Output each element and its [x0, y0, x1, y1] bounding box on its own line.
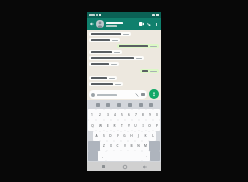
- button[interactable]: [89, 32, 131, 36]
- button[interactable]: U: [132, 120, 139, 131]
- button[interactable]: W: [96, 120, 104, 131]
- button[interactable]: H: [128, 131, 135, 141]
- button[interactable]: Voice call: [145, 20, 153, 28]
- staticText: O: [148, 124, 151, 128]
- button[interactable]: Recents: [99, 162, 108, 171]
- staticText: L: [152, 134, 154, 138]
- staticText: U: [134, 124, 137, 128]
- button[interactable]: 3: [104, 109, 111, 120]
- button[interactable]: More options: [153, 21, 159, 27]
- button[interactable]: Z: [100, 141, 107, 151]
- button[interactable]: ,: [98, 151, 106, 161]
- staticText: J: [138, 134, 139, 138]
- button[interactable]: 2: [96, 109, 104, 120]
- button[interactable]: [89, 38, 120, 42]
- button[interactable]: .: [142, 151, 150, 161]
- staticText: D: [109, 134, 112, 138]
- button[interactable]: M: [142, 141, 149, 151]
- button[interactable]: Contact photo: [96, 20, 104, 28]
- button[interactable]: L: [149, 131, 156, 141]
- button[interactable]: 8: [139, 109, 146, 120]
- button[interactable]: 1: [88, 109, 96, 120]
- staticText: N: [137, 144, 140, 148]
- button[interactable]: I: [139, 120, 146, 131]
- staticText: W: [99, 124, 102, 128]
- button[interactable]: D: [107, 131, 114, 141]
- button[interactable]: Home: [120, 162, 129, 171]
- staticText: S: [103, 134, 105, 138]
- button[interactable]: 5: [118, 109, 125, 120]
- staticText: 9: [149, 113, 151, 117]
- button[interactable]: [117, 44, 159, 48]
- button[interactable]: [106, 22, 137, 27]
- button[interactable]: Back: [89, 21, 95, 27]
- button[interactable]: [89, 76, 117, 80]
- button[interactable]: Back: [140, 162, 149, 171]
- button[interactable]: Clipboard: [138, 102, 143, 107]
- button[interactable]: Record voice message: [149, 89, 159, 99]
- button[interactable]: 7: [132, 109, 139, 120]
- staticText: ,: [102, 154, 103, 158]
- staticText: I: [142, 124, 144, 128]
- staticText: G: [123, 134, 126, 138]
- button[interactable]: A: [93, 131, 100, 141]
- button[interactable]: N: [135, 141, 142, 151]
- button[interactable]: Video call: [137, 20, 145, 28]
- staticText: M: [144, 144, 147, 148]
- button[interactable]: Settings: [116, 102, 121, 107]
- button[interactable]: [89, 56, 144, 60]
- button[interactable]: K: [142, 131, 149, 141]
- button[interactable]: E: [104, 120, 111, 131]
- button[interactable]: 0: [153, 109, 160, 120]
- button[interactable]: Q: [88, 120, 96, 131]
- button[interactable]: V: [121, 141, 128, 151]
- staticText: T: [121, 124, 123, 128]
- button[interactable]: Theme: [127, 102, 132, 107]
- button[interactable]: S: [100, 131, 107, 141]
- staticText: F: [117, 134, 119, 138]
- button[interactable]: 4: [111, 109, 118, 120]
- staticText: .: [146, 154, 147, 158]
- staticText: E: [107, 124, 109, 128]
- button[interactable]: [89, 82, 123, 86]
- button[interactable]: More: [148, 102, 153, 107]
- staticText: 7: [135, 113, 137, 117]
- staticText: 6: [128, 113, 130, 117]
- staticText: 5: [121, 113, 123, 117]
- button[interactable]: T: [118, 120, 125, 131]
- button[interactable]: C: [114, 141, 121, 151]
- staticText: Y: [128, 124, 130, 128]
- button[interactable]: [140, 69, 159, 73]
- staticText: 4: [114, 113, 116, 117]
- button[interactable]: G: [121, 131, 128, 141]
- other: Attach: [135, 93, 139, 97]
- staticText: Q: [91, 124, 94, 128]
- staticText: C: [116, 144, 119, 148]
- button[interactable]: Y: [125, 120, 132, 131]
- staticText: V: [124, 144, 126, 148]
- staticText: A: [95, 134, 98, 138]
- button[interactable]: 6: [125, 109, 132, 120]
- button[interactable]: Sticker: [105, 102, 110, 107]
- button[interactable]: B: [128, 141, 135, 151]
- staticText: 8: [142, 113, 144, 117]
- button[interactable]: [89, 62, 119, 66]
- staticText: K: [144, 134, 147, 138]
- button[interactable]: Emoji: [89, 90, 147, 99]
- other: Camera: [141, 93, 145, 96]
- button[interactable]: 9: [146, 109, 153, 120]
- button[interactable]: P: [153, 120, 160, 131]
- staticText: Z: [103, 144, 105, 148]
- button[interactable]: GIF: [95, 102, 100, 107]
- button[interactable]: O: [146, 120, 153, 131]
- button[interactable]: F: [114, 131, 121, 141]
- button[interactable]: R: [111, 120, 118, 131]
- button[interactable]: J: [135, 131, 142, 141]
- button[interactable]: [89, 50, 122, 54]
- button[interactable]: X: [107, 141, 114, 151]
